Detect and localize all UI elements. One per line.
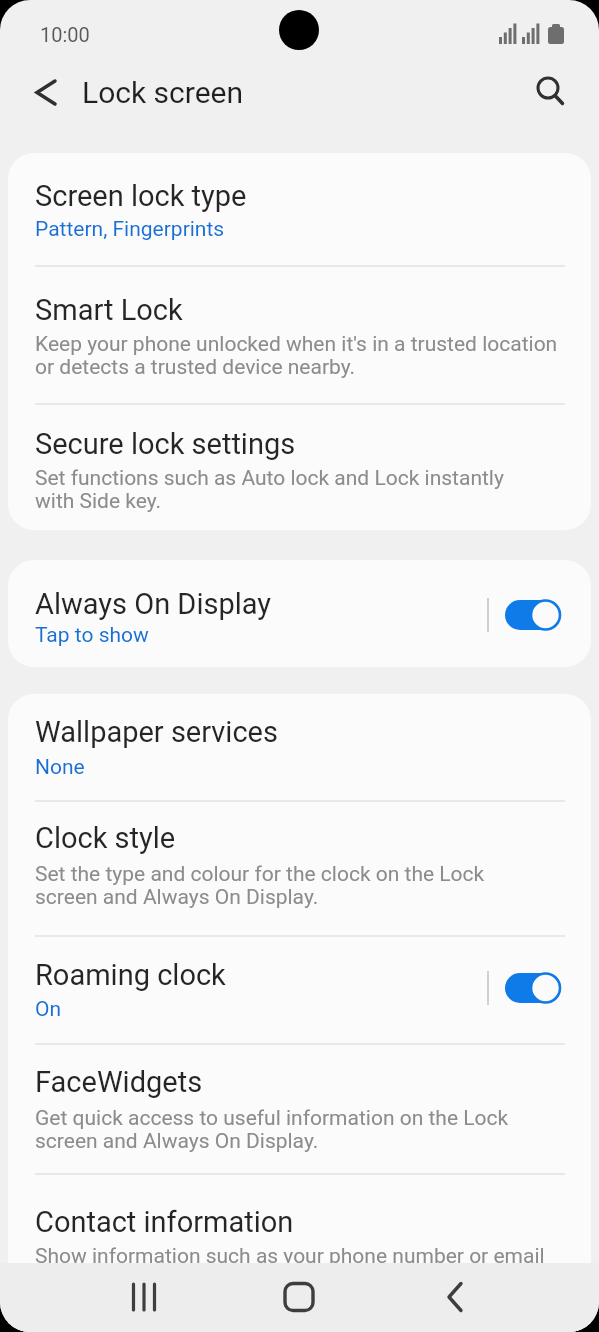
staticText: Tap to show [35,623,149,648]
staticText: Show information such as your phone numb… [35,1244,545,1269]
staticText: Secure lock settings [35,427,296,461]
staticText: Always On Display [35,587,272,621]
button[interactable] [8,153,591,266]
button[interactable] [8,405,591,530]
staticText: with Side key. [35,489,162,514]
staticText: Pattern, Fingerprints [35,217,225,242]
staticText: Screen lock type [35,179,247,213]
button[interactable] [8,1045,591,1174]
button[interactable] [8,560,591,667]
staticText: screen and Always On Display. [35,885,319,910]
staticText: Clock style [35,821,176,855]
staticText: 10:00 [40,23,90,46]
staticText: Roaming clock [35,958,226,992]
staticText: Lock screen [82,75,244,110]
staticText: FaceWidgets [35,1065,203,1099]
staticText: On [35,997,62,1022]
staticText: or detects a trusted device nearby. [35,355,356,380]
button[interactable] [95,1263,195,1332]
staticText: screen and Always On Display. [35,1129,319,1154]
button[interactable] [8,694,591,801]
staticText: None [35,755,85,780]
staticText: Smart Lock [35,293,183,327]
staticText: Keep your phone unlocked when it's in a … [35,332,558,357]
button[interactable] [8,937,591,1044]
button[interactable] [527,66,577,116]
staticText: Set functions such as Auto lock and Lock… [35,466,504,491]
button[interactable] [8,1175,591,1263]
button[interactable] [405,1263,505,1332]
button[interactable] [23,70,69,116]
button[interactable] [249,1263,349,1332]
staticText: Wallpaper services [35,715,278,749]
button[interactable] [8,267,591,404]
staticText: Set the type and colour for the clock on… [35,862,485,887]
staticText: Contact information [35,1205,294,1239]
staticText: Get quick access to useful information o… [35,1106,509,1131]
button[interactable] [8,802,591,936]
